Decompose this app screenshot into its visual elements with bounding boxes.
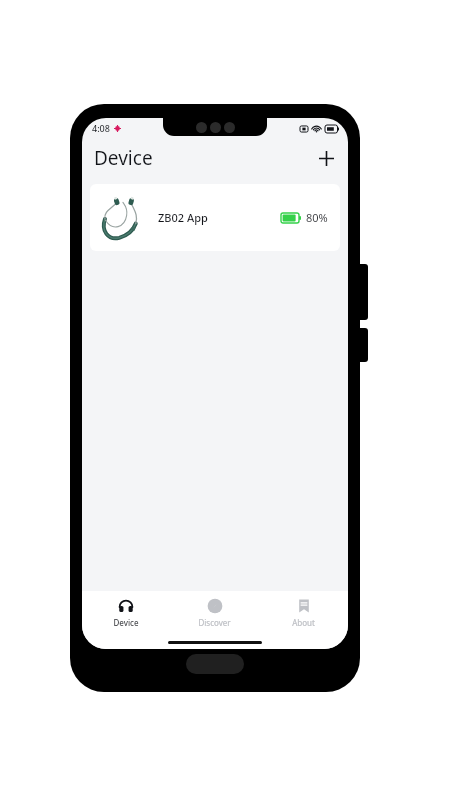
staticText: Discover	[198, 617, 231, 628]
staticText: 4:08	[92, 122, 110, 134]
button[interactable]: About	[259, 594, 348, 632]
staticText: About	[292, 617, 315, 628]
staticText: Device	[94, 145, 153, 171]
staticText: Device	[113, 617, 139, 628]
staticText: ZB02 App	[158, 210, 208, 225]
staticText: 80%	[306, 210, 328, 225]
button[interactable]: Add device	[310, 142, 342, 174]
button[interactable]: Device	[82, 594, 170, 632]
button[interactable]: ZB02 App	[90, 184, 340, 251]
button[interactable]: Discover	[170, 594, 259, 632]
